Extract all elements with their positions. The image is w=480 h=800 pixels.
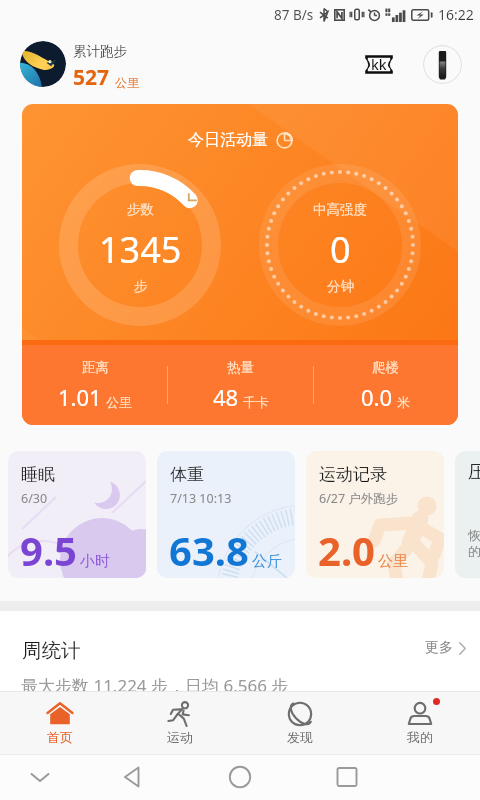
- staticText: 7/13 10:13: [170, 490, 232, 507]
- button[interactable]: 今日活动量: [22, 104, 458, 425]
- button[interactable]: My band device: [423, 45, 462, 84]
- staticText: 首页: [47, 729, 73, 745]
- staticText: 9.5: [20, 523, 77, 577]
- staticText: 公斤: [252, 552, 282, 571]
- staticText: 527: [73, 63, 110, 92]
- staticText: 63.8: [169, 523, 249, 577]
- staticText: 步数: [127, 201, 154, 218]
- staticText: 我的: [407, 729, 433, 745]
- staticText: 中高强度: [313, 201, 367, 218]
- button[interactable]: 更多: [425, 639, 466, 657]
- staticText: 0.0: [361, 382, 393, 412]
- button[interactable]: Coupons: [358, 44, 400, 84]
- staticText: 睡眠: [21, 464, 55, 485]
- button[interactable]: 运动: [120, 691, 240, 754]
- staticText: 米: [397, 394, 410, 410]
- staticText: 爬楼: [372, 359, 399, 376]
- staticText: 发现: [287, 729, 313, 745]
- staticText: 6/27 户外跑步: [319, 490, 399, 507]
- button[interactable]: Home: [210, 754, 270, 800]
- button[interactable]: 首页: [0, 691, 120, 754]
- staticText: 最大步数 11,224 步，日均 6,566 步: [21, 674, 289, 697]
- staticText: 更多: [425, 639, 453, 657]
- button[interactable]: Back: [104, 754, 164, 800]
- staticText: 1.01: [58, 382, 102, 412]
- staticText: 0: [330, 225, 351, 274]
- staticText: 分钟: [327, 278, 354, 295]
- staticText: 公里: [115, 75, 139, 90]
- staticText: 体重: [170, 464, 204, 485]
- staticText: 今日活动量: [188, 130, 268, 150]
- staticText: 恢: [468, 527, 480, 543]
- button[interactable]: 体重: [157, 451, 295, 578]
- staticText: 累计跑步: [73, 43, 127, 60]
- button[interactable]: Hide keyboard: [10, 754, 70, 800]
- staticText: 2.0: [318, 523, 375, 577]
- staticText: 87 B/s: [274, 6, 314, 24]
- button[interactable]: 发现: [240, 691, 360, 754]
- button[interactable]: Recents: [317, 754, 377, 800]
- staticText: 周统计: [22, 638, 81, 663]
- staticText: 的: [468, 543, 480, 559]
- staticText: 6/30: [21, 490, 48, 507]
- button[interactable]: 运动记录: [306, 451, 444, 578]
- staticText: 距离: [82, 359, 109, 376]
- staticText: 热量: [227, 359, 254, 376]
- staticText: 1345: [99, 225, 182, 274]
- button[interactable]: 我的: [360, 691, 480, 754]
- staticText: kk: [371, 55, 387, 74]
- staticText: 公里: [378, 552, 408, 571]
- staticText: 步: [134, 278, 148, 295]
- staticText: 16:22: [438, 5, 474, 24]
- staticText: 公里: [106, 394, 132, 410]
- staticText: 48: [213, 382, 239, 412]
- staticText: 小时: [80, 552, 110, 571]
- staticText: 千卡: [243, 394, 269, 410]
- staticText: 运动: [167, 729, 193, 745]
- button[interactable]: 睡眠: [8, 451, 146, 578]
- button[interactable]: 压: [455, 451, 480, 578]
- staticText: 运动记录: [319, 464, 387, 485]
- staticText: 压: [468, 461, 480, 484]
